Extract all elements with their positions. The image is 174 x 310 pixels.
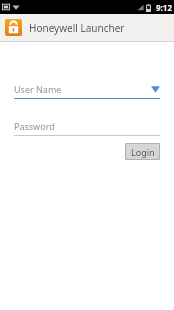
button[interactable]: Login [125,143,160,160]
staticText: 9:12 [156,2,172,13]
staticText: Password [14,120,55,132]
staticText: User Name [14,83,62,95]
staticText: Login [131,146,155,158]
other: Select user name [151,86,160,93]
staticText: Honeywell Launcher [29,21,125,35]
button[interactable]: User Name [14,83,160,99]
button[interactable]: Password [14,120,160,136]
